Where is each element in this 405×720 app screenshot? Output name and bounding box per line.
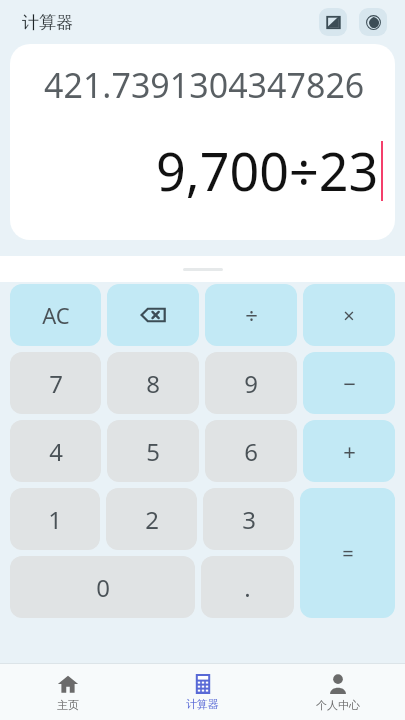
staticText: × — [343, 302, 355, 329]
button[interactable]: 7 — [10, 352, 101, 414]
button[interactable]: Screenshot — [319, 8, 347, 36]
button[interactable]: . — [201, 556, 294, 618]
staticText: 2 — [145, 503, 159, 536]
button[interactable]: 0 — [10, 556, 195, 618]
staticText: 0 — [96, 571, 110, 604]
staticText: 主页 — [57, 698, 79, 712]
button[interactable]: 个人中心 — [270, 664, 405, 720]
button[interactable]: 计算器 — [135, 664, 270, 720]
button[interactable]: 2 — [106, 488, 197, 550]
button[interactable]: 6 — [205, 420, 297, 482]
staticText: 9 — [244, 367, 258, 400]
staticText: 9,700÷23 — [156, 135, 379, 206]
button[interactable]: = — [300, 488, 395, 618]
staticText: + — [343, 436, 356, 466]
button[interactable]: Backspace — [107, 284, 199, 346]
staticText: 4 — [49, 435, 63, 468]
button[interactable]: 1 — [10, 488, 100, 550]
button[interactable]: 9 — [205, 352, 297, 414]
button[interactable]: 5 — [107, 420, 199, 482]
button[interactable]: AC — [10, 284, 101, 346]
button[interactable]: ÷ — [205, 284, 297, 346]
staticText: 6 — [244, 435, 258, 468]
button[interactable]: × — [303, 284, 395, 346]
button[interactable]: 8 — [107, 352, 199, 414]
staticText: 5 — [146, 435, 160, 468]
staticText: ÷ — [245, 300, 258, 330]
button[interactable]: 3 — [203, 488, 294, 550]
staticText: = — [342, 540, 354, 567]
staticText: 计算器 — [22, 12, 73, 33]
button[interactable]: 4 — [10, 420, 101, 482]
button[interactable]: Theme — [359, 8, 387, 36]
staticText: 计算器 — [186, 697, 219, 711]
staticText: − — [343, 368, 356, 398]
staticText: 7 — [49, 367, 63, 400]
staticText: 3 — [242, 503, 256, 536]
button[interactable]: + — [303, 420, 395, 482]
button[interactable]: − — [303, 352, 395, 414]
button[interactable]: 主页 — [0, 664, 135, 720]
staticText: 个人中心 — [316, 698, 360, 712]
staticText: 1 — [48, 503, 62, 536]
staticText: 8 — [146, 367, 160, 400]
staticText: . — [244, 571, 251, 604]
staticText: 421.7391304347826 — [44, 62, 365, 108]
staticText: AC — [42, 300, 70, 330]
